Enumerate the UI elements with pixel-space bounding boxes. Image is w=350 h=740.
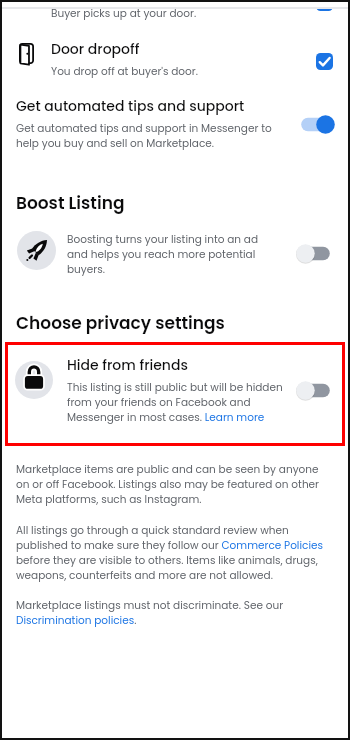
staticText: Boosting turns your listing into an ad a…	[67, 232, 267, 277]
button[interactable]: Turn off	[299, 115, 335, 134]
button[interactable]: Door dropoff selected	[316, 53, 333, 70]
staticText: Hide from friends	[67, 355, 188, 375]
staticText: Get automated tips and support in Messen…	[16, 121, 281, 151]
staticText: Door dropoff	[51, 39, 140, 59]
button[interactable]: Door dropoff	[0, 30, 350, 82]
button[interactable]: Buyer picks up at your door.	[0, 0, 350, 20]
button[interactable]: Get automated tips and support	[0, 95, 350, 163]
staticText: Boost Listing	[16, 191, 125, 215]
staticText: Get automated tips and support	[16, 96, 245, 116]
staticText: All listings go through a quick standard…	[16, 523, 326, 583]
staticText: Choose privacy settings	[16, 311, 225, 335]
staticText: This listing is still public but will be…	[67, 380, 292, 425]
staticText: Buyer picks up at your door.	[51, 6, 197, 21]
button[interactable]: Boosting turns your listing into an ad a…	[0, 225, 350, 277]
staticText: Marketplace listings must not discrimina…	[16, 598, 326, 628]
staticText: Marketplace items are public and can be …	[16, 462, 326, 507]
button[interactable]: Hide from friends	[8, 345, 342, 443]
button[interactable]: Turn on	[296, 381, 332, 400]
staticText: You drop off at buyer's door.	[51, 64, 198, 79]
button[interactable]: Turn on	[296, 244, 332, 263]
